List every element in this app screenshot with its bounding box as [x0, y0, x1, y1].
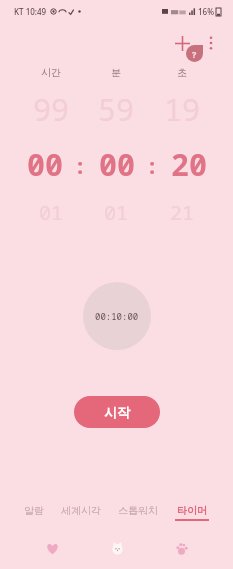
staticText: 19 — [164, 89, 200, 130]
staticText: 00 — [27, 144, 63, 185]
staticText: 스톱워치 — [118, 504, 158, 517]
button[interactable]: Help — [186, 45, 203, 62]
button[interactable]: Home — [104, 535, 130, 561]
staticText: 알람 — [24, 504, 44, 517]
staticText: ? — [192, 48, 197, 60]
staticText: : — [149, 150, 156, 180]
staticText: 20 — [171, 144, 207, 185]
staticText: 분 — [111, 66, 121, 79]
staticText: 16% — [198, 6, 214, 17]
staticText: 시간 — [41, 66, 61, 79]
button[interactable]: Recent apps — [168, 535, 194, 561]
staticText: 01 — [39, 199, 63, 226]
staticText: : — [77, 150, 84, 180]
staticText: KT 10:49 — [14, 6, 47, 17]
button[interactable]: Back — [39, 535, 65, 561]
staticText: 세계시각 — [61, 504, 101, 517]
button[interactable]: 타이머 — [172, 500, 212, 525]
button[interactable]: 시작 — [74, 396, 160, 428]
staticText: 00 — [99, 144, 135, 185]
button[interactable]: Add timer preset — [167, 28, 197, 58]
button[interactable]: 스톱워치 — [115, 500, 161, 525]
staticText: 21 — [170, 199, 194, 226]
button[interactable]: 알람 — [21, 500, 47, 525]
button[interactable]: 00:10:00 — [83, 282, 151, 350]
button[interactable]: More options — [197, 29, 225, 57]
staticText: 시작 — [104, 404, 130, 420]
button[interactable]: 세계시각 — [58, 500, 104, 525]
staticText: 99 — [33, 89, 69, 130]
staticText: 타이머 — [177, 504, 207, 517]
staticText: 00:10:00 — [95, 310, 139, 322]
staticText: 초 — [177, 66, 187, 79]
staticText: 01 — [104, 199, 128, 226]
staticText: 59 — [98, 89, 134, 130]
